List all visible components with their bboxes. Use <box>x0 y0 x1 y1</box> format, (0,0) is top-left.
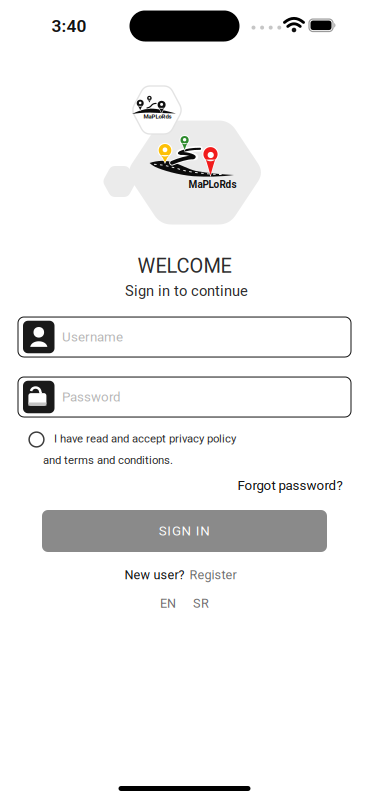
staticText: WELCOME <box>137 254 231 278</box>
staticText: 3:40 <box>51 16 86 36</box>
staticText: MaPLoRds <box>143 113 171 120</box>
staticText: MaPLoRds <box>188 179 236 190</box>
button[interactable]: Forgot password? <box>237 478 342 493</box>
button[interactable]: Accept privacy policy <box>26 429 46 449</box>
staticText: Forgot password? <box>237 478 342 493</box>
staticText: Username <box>62 329 123 345</box>
staticText: Register <box>189 568 236 582</box>
staticText: Password <box>62 389 121 405</box>
button[interactable]: Password <box>18 377 351 417</box>
button[interactable]: Username <box>18 317 351 357</box>
staticText: Sign in to continue <box>125 282 248 300</box>
staticText: SR <box>193 596 209 611</box>
staticText: and terms and conditions. <box>43 454 173 467</box>
staticText: SIGN IN <box>159 523 210 539</box>
staticText: EN <box>160 596 176 611</box>
button[interactable]: Register <box>189 568 236 582</box>
button[interactable]: EN <box>160 596 176 611</box>
staticText: New user? <box>124 568 184 582</box>
button[interactable]: SR <box>193 596 209 611</box>
button[interactable]: SIGN IN <box>42 510 327 552</box>
staticText: I have read and accept privacy policy <box>54 432 236 445</box>
